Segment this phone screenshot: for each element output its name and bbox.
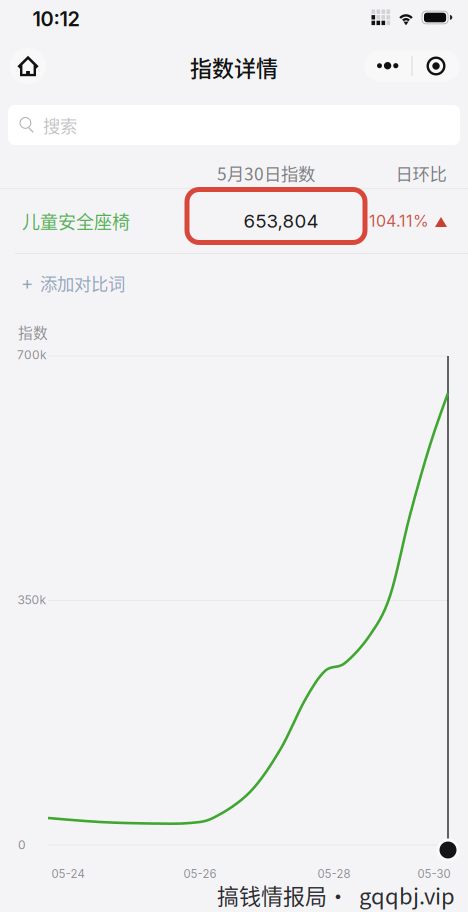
staticText: 搜索 [43, 112, 77, 138]
staticText: 0 [18, 838, 26, 852]
button[interactable]: 搜索 [8, 105, 460, 145]
staticText: 添加对比词 [40, 270, 125, 296]
staticText: 10:12 [32, 7, 79, 31]
button[interactable]: + [7, 261, 139, 305]
staticText: 05-30 [417, 867, 450, 881]
staticText: 05-26 [183, 867, 216, 881]
staticText: 5月30日指数 [217, 160, 315, 186]
staticText: 指数详情 [190, 51, 278, 83]
staticText: 104.11% [369, 211, 429, 231]
button[interactable]: Close mini program [412, 50, 459, 81]
staticText: 05-28 [317, 867, 350, 881]
staticText: 日环比 [395, 160, 446, 186]
button[interactable]: Home [10, 48, 46, 84]
staticText: 653,804 [243, 210, 318, 232]
staticText: + [21, 272, 33, 294]
staticText: 搞钱情报局· gqqbj.vip [217, 879, 455, 911]
staticText: 儿童安全座椅 [22, 208, 130, 234]
button[interactable]: More options [364, 50, 411, 81]
staticText: 700k [17, 348, 47, 362]
button[interactable]: 儿童安全座椅 [0, 189, 468, 253]
staticText: 350k [17, 593, 46, 607]
staticText: 指数 [18, 321, 48, 343]
staticText: 05-24 [51, 867, 84, 881]
